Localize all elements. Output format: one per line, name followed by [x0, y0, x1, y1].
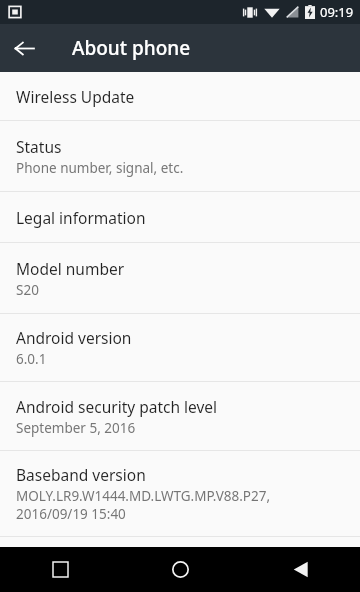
button[interactable]: Home — [120, 547, 240, 592]
staticText: Phone number, signal, etc. — [16, 159, 184, 177]
button[interactable]: Wireless Update — [0, 72, 360, 120]
button[interactable]: Status — [0, 121, 360, 191]
button[interactable]: Back — [240, 547, 360, 592]
staticText: September 5, 2016 — [16, 419, 136, 437]
button[interactable]: Android security patch level — [0, 382, 360, 450]
staticText: Status — [16, 136, 62, 157]
staticText: About phone — [72, 35, 191, 61]
staticText: Baseband version — [16, 464, 146, 485]
staticText: Android security patch level — [16, 396, 218, 417]
button[interactable]: Model number — [0, 243, 360, 313]
button[interactable]: Legal information — [0, 192, 360, 242]
staticText: MOLY.LR9.W1444.MD.LWTG.MP.V88.P27, 2016/… — [16, 487, 271, 523]
staticText: Android version — [16, 327, 132, 348]
button[interactable]: Back — [0, 24, 48, 72]
button[interactable]: Recent apps — [0, 547, 120, 592]
staticText: 6.0.1 — [16, 350, 47, 368]
staticText: Legal information — [16, 207, 146, 228]
staticText: Model number — [16, 258, 125, 279]
staticText: 09:19 — [320, 3, 354, 21]
staticText: Wireless Update — [16, 86, 135, 107]
button[interactable]: Baseband version — [0, 451, 360, 536]
button[interactable]: Android version — [0, 314, 360, 381]
staticText: S20 — [16, 281, 39, 299]
